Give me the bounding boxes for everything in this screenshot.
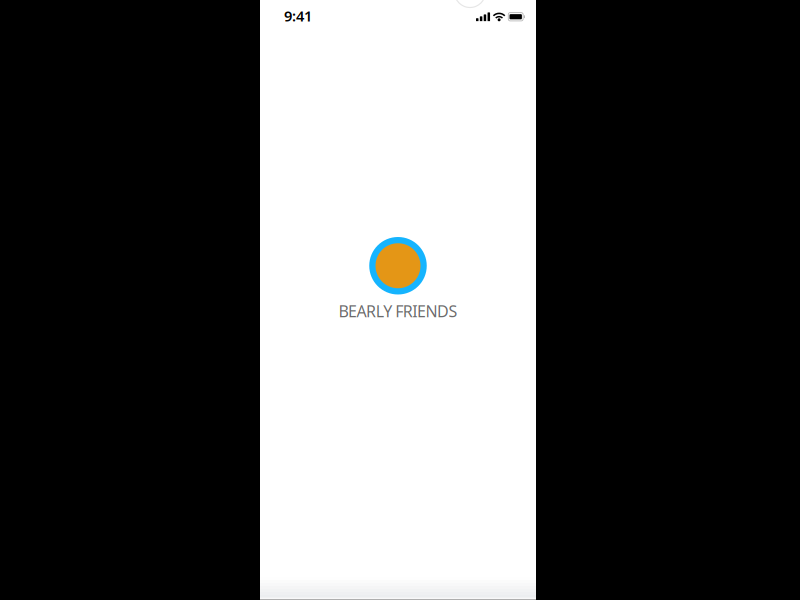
button[interactable]: Bearly Friends [260,237,536,321]
staticText: BEARLY FRIENDS [338,300,457,322]
staticText: 9:41 [284,6,312,25]
